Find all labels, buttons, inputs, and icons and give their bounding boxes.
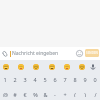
staticText: - <box>54 91 56 97</box>
button[interactable]: Emoji 6 <box>78 63 85 70</box>
button[interactable]: ( <box>70 91 80 97</box>
staticText: 3 <box>23 76 27 82</box>
button[interactable]: ) <box>80 91 90 97</box>
button[interactable]: 4 <box>30 76 40 82</box>
staticText: 8 <box>73 76 77 82</box>
button[interactable]: Emoji 2 <box>17 63 24 70</box>
button[interactable]: 7 <box>60 76 70 82</box>
button[interactable]: % <box>30 91 40 97</box>
button[interactable]: Attach file <box>0 47 10 60</box>
staticText: € <box>23 91 27 97</box>
staticText: @ <box>3 91 8 97</box>
staticText: % <box>33 91 38 97</box>
button[interactable]: Voice input <box>88 63 97 70</box>
staticText: SENDEN <box>86 51 98 55</box>
button[interactable]: / <box>90 91 100 97</box>
button[interactable]: SENDEN <box>85 49 99 57</box>
staticText: 4 <box>33 76 37 82</box>
staticText: + <box>63 91 67 97</box>
button[interactable]: + <box>60 91 70 97</box>
button[interactable]: Emoji 1 <box>2 63 9 70</box>
button[interactable]: Emoji 3 <box>32 63 39 70</box>
button[interactable]: 5 <box>40 76 50 82</box>
button[interactable]: Emoji 5 <box>63 63 70 70</box>
staticText: 9 <box>83 76 87 82</box>
button[interactable]: 9 <box>80 76 90 82</box>
staticText: 1 <box>3 76 7 82</box>
button[interactable]: 8 <box>70 76 80 82</box>
staticText: & <box>43 91 48 97</box>
button[interactable]: # <box>10 91 20 97</box>
button[interactable]: 1 <box>0 76 10 82</box>
staticText: ) <box>84 91 86 97</box>
staticText: Nachricht eingeben <box>12 50 59 57</box>
staticText: # <box>13 91 17 97</box>
staticText: / <box>94 91 97 97</box>
button[interactable]: 6 <box>50 76 60 82</box>
staticText: 2 <box>13 76 17 82</box>
button[interactable]: 2 <box>10 76 20 82</box>
button[interactable]: & <box>40 91 50 97</box>
button[interactable]: @ <box>0 91 10 97</box>
staticText: 0 <box>93 76 97 82</box>
staticText: 7 <box>63 76 67 82</box>
button[interactable]: 3 <box>20 76 30 82</box>
button[interactable]: - <box>50 91 60 97</box>
button[interactable]: Insert emoji <box>74 47 85 60</box>
staticText: 5 <box>43 76 47 82</box>
staticText: 6 <box>53 76 57 82</box>
button[interactable]: 0 <box>90 76 100 82</box>
staticText: ( <box>74 91 76 97</box>
button[interactable]: € <box>20 91 30 97</box>
button[interactable]: Emoji 4 <box>48 63 55 70</box>
